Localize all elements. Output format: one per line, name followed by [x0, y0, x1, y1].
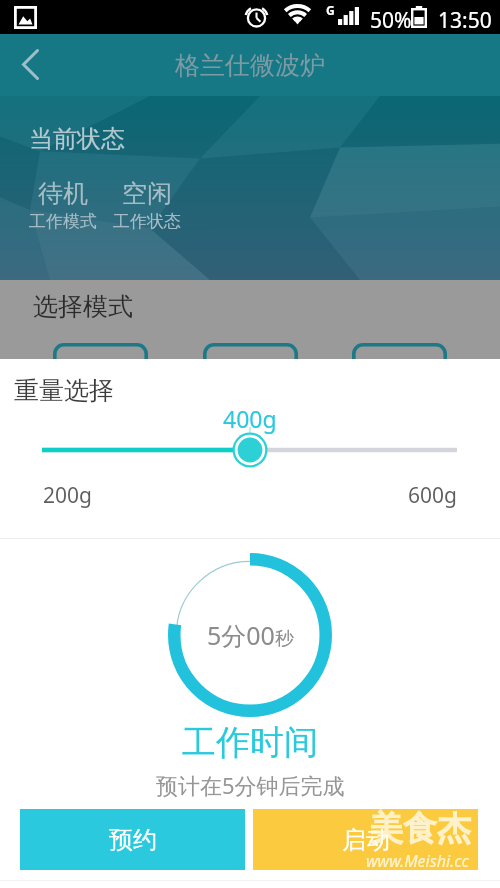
staticText: G — [326, 2, 335, 18]
staticText: 当前状态 — [29, 124, 125, 154]
button[interactable]: 预约 — [20, 809, 245, 870]
staticText: www.Meishi.cc — [366, 850, 469, 872]
staticText: 工作状态 — [113, 211, 181, 232]
staticText: 待机 — [38, 178, 88, 209]
staticText: 13:50 — [438, 6, 492, 35]
staticText: 选择模式 — [33, 291, 133, 322]
staticText: 预约 — [109, 825, 157, 855]
staticText: 工作时间 — [182, 721, 318, 764]
staticText: 空闲 — [122, 178, 172, 209]
button[interactable]: Back — [0, 34, 58, 96]
staticText: 400g — [223, 403, 277, 434]
button[interactable] — [203, 343, 298, 359]
button[interactable] — [53, 343, 148, 359]
staticText: 600g — [408, 481, 457, 510]
staticText: 5分00 — [207, 618, 275, 652]
staticText: 秒 — [275, 627, 294, 651]
staticText: 工作模式 — [29, 211, 97, 232]
button[interactable]: 启动 — [253, 809, 478, 870]
staticText: 50% — [370, 6, 412, 35]
staticText: 美食杰 — [369, 807, 471, 850]
button[interactable] — [352, 343, 447, 359]
staticText: 启动 — [342, 825, 390, 855]
staticText: 200g — [43, 481, 92, 510]
staticText: 格兰仕微波炉 — [175, 50, 325, 81]
staticText: 重量选择 — [14, 375, 114, 406]
staticText: 预计在5分钟后完成 — [156, 770, 345, 800]
